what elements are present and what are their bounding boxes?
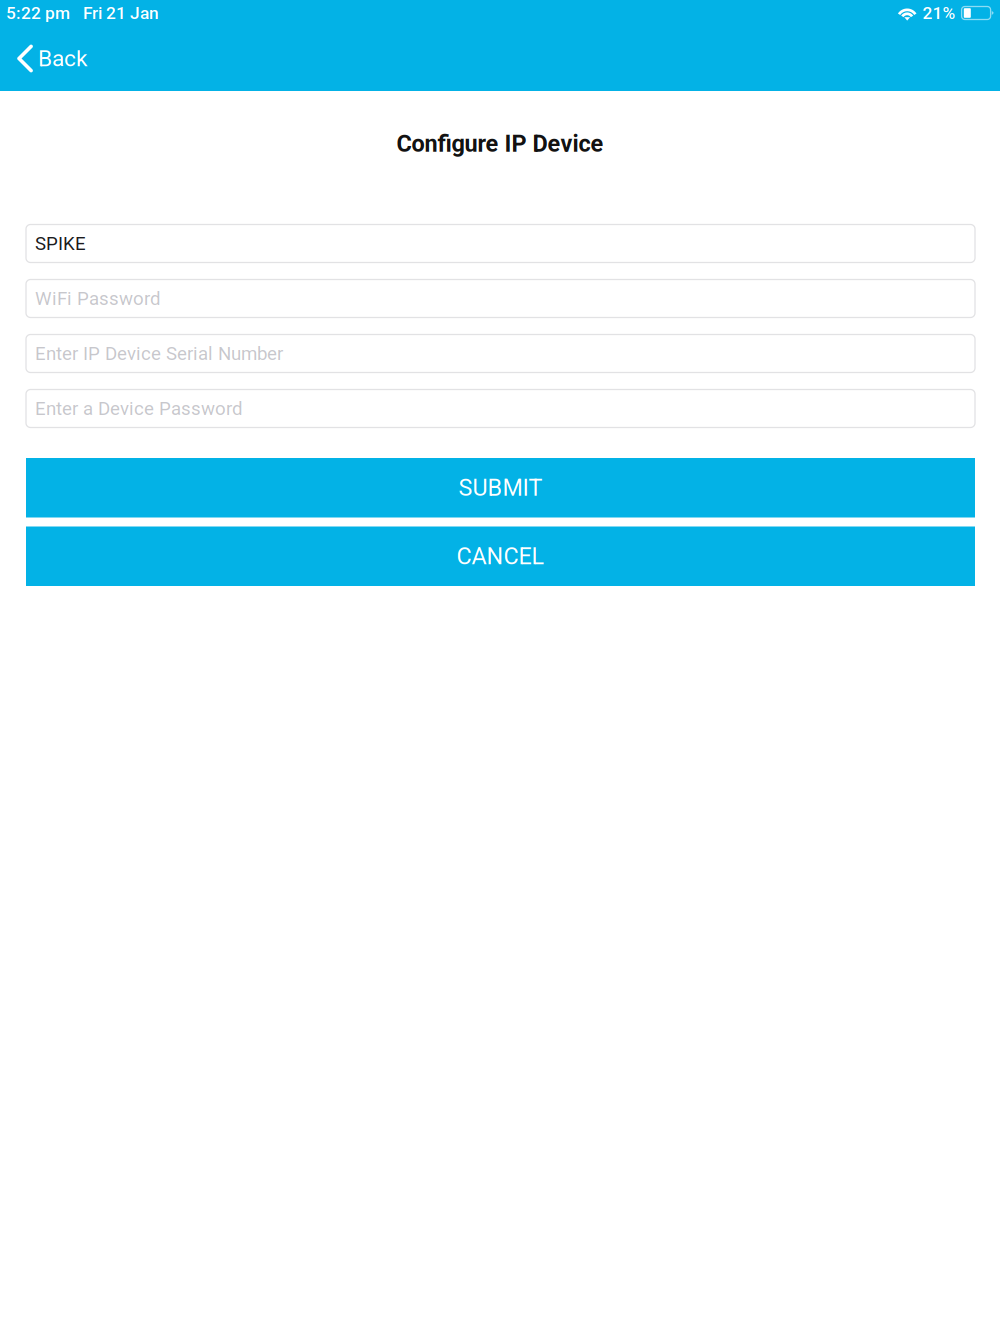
button[interactable]: WiFi Password <box>26 279 975 317</box>
staticText: CANCEL <box>456 543 544 570</box>
staticText: 21% <box>923 3 956 23</box>
button[interactable]: SUBMIT <box>26 458 975 517</box>
button[interactable]: CANCEL <box>26 526 975 586</box>
staticText: SPIKE <box>35 233 86 254</box>
button[interactable]: Back <box>0 26 101 91</box>
button[interactable]: SPIKE <box>26 224 975 262</box>
button[interactable]: Enter a Device Password <box>26 389 975 427</box>
staticText: Enter IP Device Serial Number <box>35 343 283 364</box>
staticText: WiFi Password <box>35 288 161 309</box>
staticText: Configure IP Device <box>396 130 603 157</box>
staticText: Back <box>38 45 87 72</box>
staticText: Enter a Device Password <box>35 398 243 419</box>
button[interactable]: Enter IP Device Serial Number <box>26 334 975 372</box>
staticText: 5:22 pm <box>6 3 70 23</box>
staticText: SUBMIT <box>458 474 542 501</box>
staticText: Fri 21 Jan <box>83 3 159 23</box>
